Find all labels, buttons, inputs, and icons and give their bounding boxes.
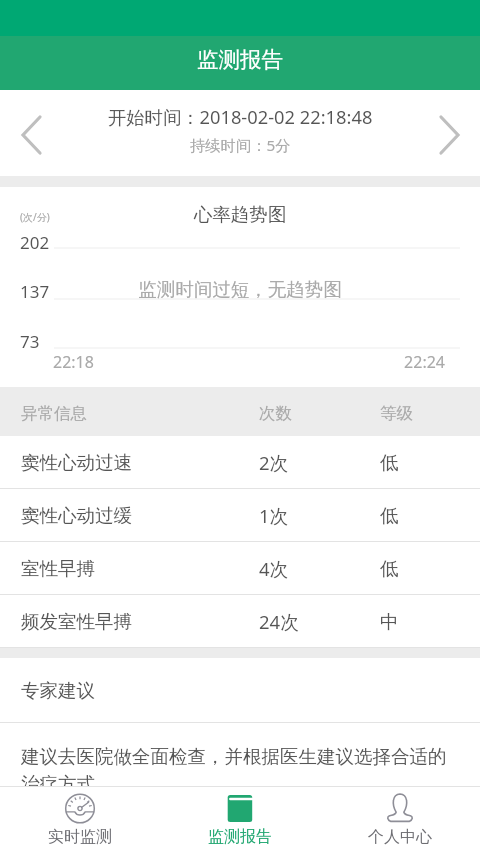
button[interactable]: 实时监测 — [0, 787, 160, 853]
staticText: 22:18 — [53, 351, 94, 373]
staticText: 次数 — [259, 403, 292, 424]
staticText: (次/分) — [20, 210, 50, 224]
staticText: 开始时间：2018-02-02 22:18:48 — [108, 104, 373, 129]
staticText: 低 — [380, 504, 399, 527]
staticText: 窦性心动过缓 — [21, 504, 132, 527]
button[interactable]: 室性早搏 — [0, 542, 480, 594]
staticText: 24次 — [259, 609, 299, 634]
button[interactable]: 个人中心 — [320, 787, 480, 853]
staticText: 137 — [20, 280, 50, 303]
button[interactable]: 窦性心动过速 — [0, 436, 480, 488]
staticText: 专家建议 — [21, 679, 95, 702]
staticText: 个人中心 — [368, 827, 432, 847]
staticText: 心率趋势图 — [0, 203, 480, 226]
staticText: 等级 — [380, 403, 413, 424]
staticText: 建议去医院做全面检查，并根据医生建议选择合适的治疗方式 — [21, 745, 460, 786]
staticText: 中 — [380, 610, 399, 633]
staticText: 异常信息 — [21, 403, 87, 424]
button[interactable]: Next report — [418, 94, 480, 176]
staticText: 2次 — [259, 450, 289, 475]
staticText: 实时监测 — [48, 827, 112, 847]
staticText: 监测时间过短，无趋势图 — [0, 278, 480, 301]
staticText: 73 — [20, 330, 40, 353]
staticText: 室性早搏 — [21, 557, 95, 580]
button[interactable]: 频发室性早搏 — [0, 595, 480, 647]
staticText: 22:24 — [0, 351, 445, 373]
staticText: 持续时间：5分 — [190, 135, 291, 156]
button[interactable]: Previous report — [0, 94, 62, 176]
staticText: 窦性心动过速 — [21, 451, 132, 474]
staticText: 低 — [380, 557, 399, 580]
staticText: 202 — [20, 231, 50, 254]
button[interactable]: 窦性心动过缓 — [0, 489, 480, 541]
staticText: 频发室性早搏 — [21, 610, 132, 633]
button[interactable]: 监测报告 — [160, 787, 320, 853]
staticText: 4次 — [259, 556, 289, 581]
staticText: 监测报告 — [208, 827, 272, 847]
staticText: 1次 — [259, 503, 289, 528]
staticText: 低 — [380, 451, 399, 474]
staticText: 监测报告 — [197, 46, 283, 73]
